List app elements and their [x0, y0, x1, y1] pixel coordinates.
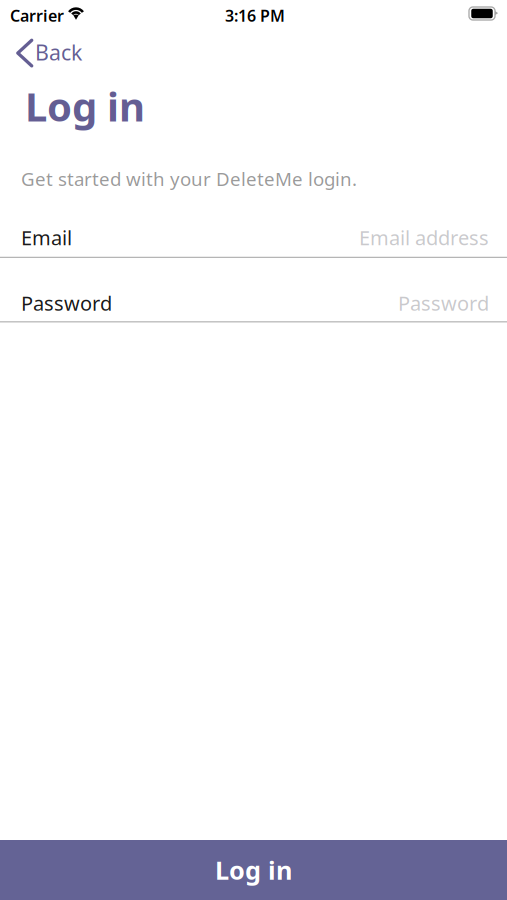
button[interactable]: Email: [0, 215, 507, 257]
button[interactable]: Back: [0, 28, 92, 72]
staticText: Back: [35, 38, 82, 66]
staticText: Password: [21, 290, 112, 316]
staticText: Carrier: [10, 5, 64, 26]
staticText: Log in: [215, 853, 292, 887]
staticText: Email: [21, 224, 72, 251]
staticText: Get started with your DeleteMe login.: [21, 166, 357, 191]
button[interactable]: Password: [0, 258, 507, 321]
staticText: 3:16 PM: [225, 5, 285, 26]
button[interactable]: Log in: [0, 840, 507, 900]
staticText: Password: [398, 290, 489, 316]
staticText: Email address: [359, 224, 489, 251]
staticText: Log in: [25, 79, 145, 132]
